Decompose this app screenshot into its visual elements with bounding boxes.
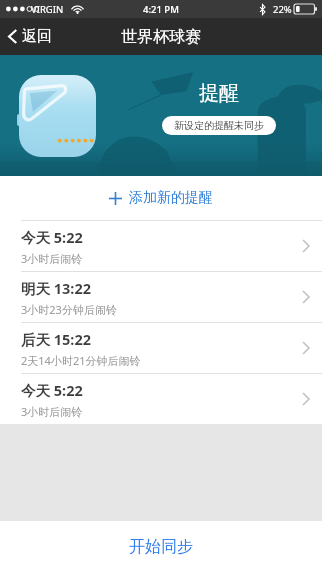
staticText: 3小时后闹铃 [21, 251, 83, 266]
staticText: VIRGIN [31, 3, 64, 16]
staticText: 3小时后闹铃 [21, 404, 83, 419]
button[interactable]: 后天 15:22 [0, 323, 322, 373]
button[interactable]: 添加新的提醒 [0, 176, 322, 220]
staticText: 开始同步 [129, 537, 193, 557]
button[interactable]: 今天 5:22 [0, 221, 322, 271]
staticText: 今天 5:22 [21, 380, 83, 400]
staticText: 3小时23分钟后闹铃 [21, 302, 117, 317]
button[interactable]: 明天 13:22 [0, 272, 322, 322]
staticText: 2天14小时21分钟后闹铃 [21, 353, 141, 368]
button[interactable]: 返回 [0, 21, 62, 52]
staticText: 今天 5:22 [21, 227, 83, 247]
staticText: 明天 13:22 [21, 278, 92, 298]
button[interactable]: 新设定的提醒未同步 [162, 116, 276, 135]
staticText: 4:21 PM [143, 3, 179, 16]
staticText: 添加新的提醒 [129, 189, 213, 207]
staticText: 新设定的提醒未同步 [174, 119, 264, 132]
button[interactable]: 开始同步 [0, 521, 322, 572]
staticText: 后天 15:22 [21, 329, 92, 349]
staticText: 世界杯球赛 [121, 27, 201, 47]
staticText: 返回 [22, 27, 52, 46]
staticText: 22% [273, 3, 292, 16]
staticText: 提醒 [199, 81, 239, 106]
button[interactable]: 今天 5:22 [0, 374, 322, 424]
